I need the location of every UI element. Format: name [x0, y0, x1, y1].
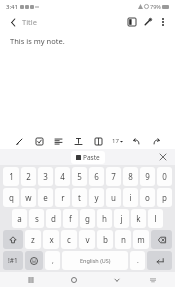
- button[interactable]: r: [55, 188, 70, 207]
- staticText: 3:41: [6, 3, 18, 11]
- button[interactable]: c: [61, 230, 77, 249]
- staticText: English (US): [80, 257, 111, 264]
- staticText: 5: [77, 171, 82, 182]
- staticText: 4: [60, 171, 65, 182]
- button[interactable]: Attach: [140, 14, 156, 30]
- staticText: 7: [111, 171, 116, 182]
- button[interactable]: b: [97, 230, 113, 249]
- staticText: r: [61, 192, 65, 203]
- button[interactable]: a: [12, 209, 27, 228]
- button[interactable]: q: [3, 188, 19, 207]
- staticText: ,: [52, 256, 54, 265]
- button[interactable]: 9: [140, 167, 155, 186]
- staticText: j: [120, 213, 123, 224]
- button[interactable]: Insert: [91, 134, 105, 148]
- staticText: c: [67, 234, 71, 245]
- staticText: t: [78, 192, 81, 203]
- button[interactable]: y: [89, 188, 104, 207]
- staticText: k: [136, 213, 141, 224]
- button[interactable]: p: [157, 188, 172, 207]
- staticText: 8: [128, 171, 133, 182]
- button[interactable]: k: [131, 209, 146, 228]
- staticText: o: [145, 192, 150, 203]
- button[interactable]: z: [25, 230, 41, 249]
- button[interactable]: 4: [55, 167, 70, 186]
- staticText: e: [43, 192, 48, 203]
- button[interactable]: 7: [106, 167, 121, 186]
- button[interactable]: n: [115, 230, 131, 249]
- button[interactable]: More options: [156, 15, 170, 29]
- staticText: Title: [22, 17, 37, 27]
- staticText: This is my note.: [10, 36, 65, 46]
- button[interactable]: 2: [21, 167, 36, 186]
- button[interactable]: 5: [72, 167, 87, 186]
- button[interactable]: j: [114, 209, 129, 228]
- button[interactable]: 1: [3, 167, 19, 186]
- button[interactable]: t: [72, 188, 87, 207]
- button[interactable]: Redo: [149, 134, 163, 148]
- staticText: 3: [43, 171, 48, 182]
- button[interactable]: o: [140, 188, 155, 207]
- staticText: z: [31, 234, 35, 245]
- staticText: 0: [162, 171, 167, 182]
- button[interactable]: Home: [67, 273, 81, 287]
- staticText: d: [51, 213, 56, 224]
- button[interactable]: e: [38, 188, 53, 207]
- button[interactable]: Undo history: [12, 134, 26, 148]
- button[interactable]: Hide keyboard: [146, 273, 160, 287]
- button[interactable]: Enter: [147, 251, 172, 270]
- staticText: .: [137, 256, 139, 265]
- button[interactable]: Back: [6, 15, 20, 29]
- button[interactable]: Paragraph: [51, 134, 65, 148]
- staticText: 1: [9, 171, 14, 182]
- button[interactable]: Checklist: [32, 134, 46, 148]
- button[interactable]: u: [106, 188, 121, 207]
- button[interactable]: x: [43, 230, 59, 249]
- button[interactable]: 3: [38, 167, 53, 186]
- staticText: u: [111, 192, 116, 203]
- staticText: 17: [112, 137, 119, 145]
- staticText: 6: [94, 171, 99, 182]
- button[interactable]: h: [97, 209, 112, 228]
- button[interactable]: .: [130, 251, 145, 270]
- button[interactable]: Text format: [71, 134, 85, 148]
- button[interactable]: i: [123, 188, 138, 207]
- button[interactable]: f: [63, 209, 78, 228]
- button[interactable]: Shift: [3, 230, 23, 249]
- staticText: y: [94, 192, 99, 203]
- staticText: n: [121, 234, 126, 245]
- button[interactable]: d: [46, 209, 61, 228]
- button[interactable]: 8: [123, 167, 138, 186]
- button[interactable]: l: [148, 209, 163, 228]
- button[interactable]: Back: [110, 273, 124, 287]
- button[interactable]: Close: [157, 151, 169, 163]
- staticText: 9: [145, 171, 150, 182]
- button[interactable]: ,: [45, 251, 60, 270]
- button[interactable]: s: [29, 209, 44, 228]
- staticText: g: [85, 213, 90, 224]
- staticText: s: [35, 213, 39, 224]
- button[interactable]: g: [80, 209, 95, 228]
- button[interactable]: Backspace: [151, 230, 172, 249]
- staticText: l: [154, 213, 157, 224]
- button[interactable]: !#1: [3, 251, 23, 270]
- button[interactable]: English (US): [62, 251, 128, 270]
- button[interactable]: Recents: [24, 273, 38, 287]
- button[interactable]: 17: [111, 137, 124, 145]
- button[interactable]: Undo: [129, 134, 143, 148]
- button[interactable]: v: [79, 230, 95, 249]
- button[interactable]: 6: [89, 167, 104, 186]
- staticText: a: [17, 213, 22, 224]
- button[interactable]: Emoji: [25, 251, 43, 270]
- staticText: Paste: [83, 153, 100, 162]
- staticText: w: [25, 192, 32, 203]
- button[interactable]: 0: [157, 167, 172, 186]
- button[interactable]: m: [133, 230, 149, 249]
- staticText: 2: [26, 171, 31, 182]
- button[interactable]: Paste: [71, 151, 105, 164]
- button[interactable]: View mode: [124, 14, 140, 30]
- staticText: q: [9, 192, 14, 203]
- button[interactable]: w: [21, 188, 36, 207]
- staticText: x: [49, 234, 54, 245]
- staticText: f: [69, 213, 72, 224]
